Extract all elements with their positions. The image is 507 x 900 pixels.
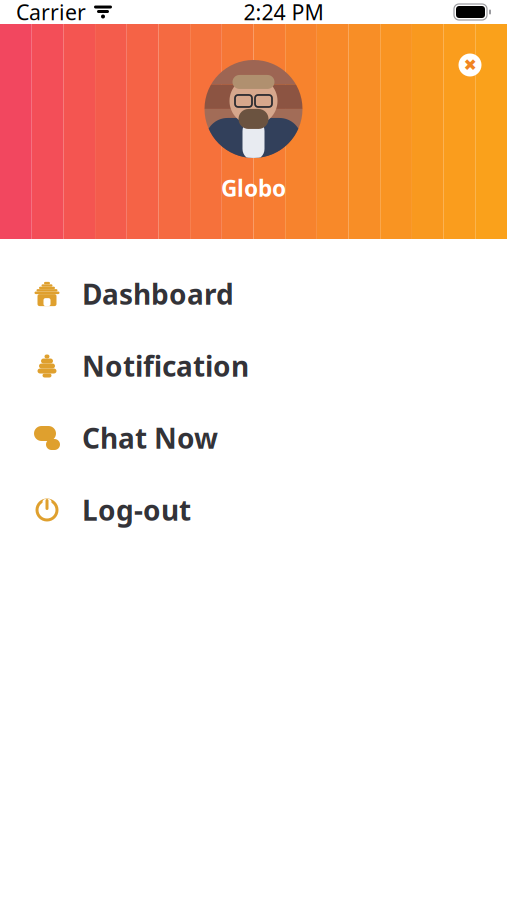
- staticText: Dashboard: [82, 275, 234, 313]
- button[interactable]: Chat Now: [0, 402, 507, 474]
- staticText: Chat Now: [82, 419, 218, 457]
- button[interactable]: Dashboard: [0, 258, 507, 330]
- staticText: ✖: [463, 56, 476, 74]
- staticText: Log-out: [82, 491, 191, 529]
- button[interactable]: Close menu: [447, 42, 493, 88]
- staticText: 2:24 PM: [243, 0, 323, 26]
- button[interactable]: Notification: [0, 330, 507, 402]
- staticText: Notification: [82, 347, 249, 385]
- staticText: Globo: [221, 173, 286, 203]
- staticText: Carrier: [16, 0, 86, 26]
- button[interactable]: Log-out: [0, 474, 507, 546]
